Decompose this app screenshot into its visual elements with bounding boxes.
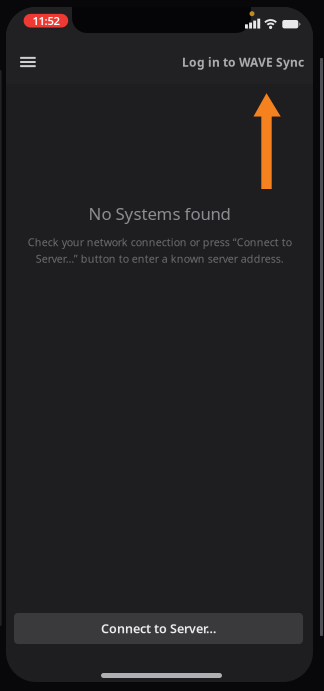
staticText: 11:52 [32,13,59,28]
staticText: Log in to WAVE Sync [182,54,304,70]
staticText: Connect to Server… [101,620,216,637]
staticText: Check your network connection or press “… [27,235,291,266]
button[interactable]: Connect to Server… [14,613,303,644]
button[interactable]: Log in to WAVE Sync [176,43,309,81]
button[interactable]: Menu [12,46,44,78]
staticText: No Systems found [88,202,230,225]
